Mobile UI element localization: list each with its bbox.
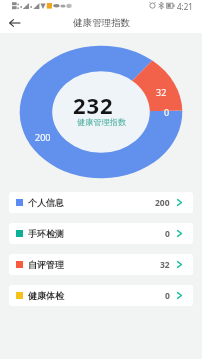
staticText: 0 — [165, 290, 170, 302]
staticText: 0 — [165, 228, 170, 240]
button[interactable]: Back — [6, 14, 24, 32]
staticText: 健康管理指数 — [73, 17, 130, 29]
staticText: 健康管理指数 — [77, 117, 127, 127]
staticText: 手环检测 — [28, 228, 64, 239]
button[interactable]: 个人信息 — [9, 192, 193, 213]
staticText: 0 — [164, 106, 170, 118]
staticText: 自评管理 — [28, 259, 64, 270]
staticText: 32 — [156, 86, 167, 98]
staticText: 健康体检 — [28, 290, 64, 301]
staticText: 200 — [155, 197, 170, 209]
staticText: 32 — [160, 259, 170, 271]
button[interactable]: 手环检测 — [9, 223, 193, 244]
button[interactable]: 自评管理 — [9, 254, 193, 275]
staticText: 200 — [35, 131, 51, 143]
staticText: 232 — [73, 90, 114, 120]
staticText: 4:21 — [177, 1, 193, 12]
button[interactable]: 健康体检 — [9, 285, 193, 306]
staticText: 个人信息 — [28, 197, 64, 208]
